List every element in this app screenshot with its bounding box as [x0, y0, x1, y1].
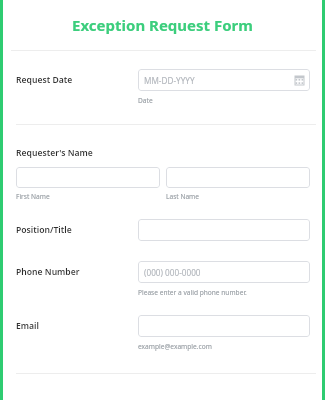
staticText: MM-DD-YYYY	[144, 75, 195, 86]
staticText: (000) 000-0000	[144, 267, 201, 278]
staticText: Email	[16, 320, 39, 332]
staticText: Position/Title	[16, 224, 72, 236]
staticText: First Name	[16, 192, 50, 201]
staticText: Requester's Name	[16, 147, 93, 159]
button[interactable]	[166, 167, 310, 188]
staticText: Please enter a valid phone number.	[138, 288, 247, 297]
staticText: Phone Number	[16, 266, 80, 278]
staticText: Date	[138, 96, 153, 105]
button[interactable]: MM-DD-YYYY	[138, 69, 310, 91]
staticText: Last Name	[166, 192, 200, 201]
button[interactable]	[16, 167, 160, 188]
staticText: Exception Request Form	[72, 15, 253, 35]
button[interactable]: (000) 000-0000	[138, 261, 310, 283]
button[interactable]	[138, 315, 310, 337]
staticText: example@example.com	[138, 342, 212, 351]
staticText: Request Date	[16, 74, 73, 86]
other: Pick date	[295, 76, 304, 85]
button[interactable]	[138, 219, 310, 241]
